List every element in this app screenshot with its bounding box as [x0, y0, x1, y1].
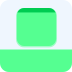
button[interactable]: Start — [16, 8, 57, 47]
button[interactable]: Done — [0, 49, 72, 72]
